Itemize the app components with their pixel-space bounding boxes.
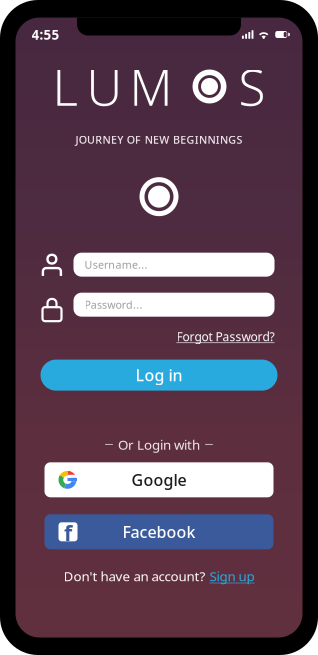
staticText: L [52,54,77,119]
staticText: M [129,54,172,119]
button[interactable]: Log in [40,360,277,391]
staticText: Sign up [209,567,254,585]
button[interactable]: Google [44,462,273,497]
staticText: Forgot Password? [176,329,274,345]
staticText: JOURNEY OF NEW BEGINNINGS [75,132,243,147]
button[interactable]: Facebook [44,514,273,549]
button[interactable]: Forgot Password? [176,329,274,345]
staticText: Password... [84,298,142,312]
staticText: f [64,519,72,547]
staticText: S [238,54,265,119]
staticText: Google [131,469,186,490]
staticText: Username... [84,258,147,272]
staticText: Log in [135,364,182,386]
staticText: 4:55 [31,26,59,43]
button[interactable]: Sign up [209,567,254,585]
staticText: Don't have an account? [63,567,205,585]
staticText: Or Login with [118,436,200,453]
staticText: U [86,54,122,119]
staticText: Facebook [122,521,195,542]
